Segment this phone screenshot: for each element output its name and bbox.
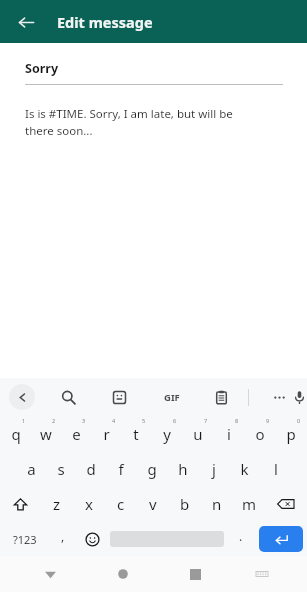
staticText: Sorry: [25, 60, 59, 77]
button[interactable]: Search: [55, 384, 81, 410]
staticText: GIF: [164, 391, 180, 404]
button[interactable]: m: [233, 486, 265, 522]
staticText: s: [57, 459, 65, 479]
staticText: z: [53, 494, 61, 514]
staticText: w: [40, 424, 52, 444]
staticText: j: [212, 459, 216, 479]
staticText: h: [178, 459, 188, 479]
staticText: 7: [204, 417, 208, 424]
button[interactable]: Clipboard: [208, 384, 234, 410]
button[interactable]: Stickers: [106, 384, 132, 410]
staticText: 5: [142, 417, 146, 424]
button[interactable]: Back: [9, 5, 43, 39]
button[interactable]: e: [61, 416, 91, 451]
button[interactable]: a: [16, 451, 46, 486]
staticText: Edit message: [57, 12, 153, 32]
button[interactable]: Switch keyboard: [231, 556, 293, 592]
button[interactable]: y: [151, 416, 182, 451]
staticText: k: [240, 459, 249, 479]
button[interactable]: x: [73, 486, 105, 522]
staticText: Is is #TIME. Sorry, I am late, but will …: [25, 106, 233, 138]
staticText: 8: [235, 417, 239, 424]
button[interactable]: r: [91, 416, 121, 451]
button[interactable]: p: [275, 416, 306, 451]
staticText: 3: [82, 417, 86, 424]
button[interactable]: o: [244, 416, 275, 451]
staticText: p: [286, 424, 296, 444]
staticText: a: [27, 459, 36, 479]
button[interactable]: Recents: [159, 556, 231, 592]
button[interactable]: Enter: [259, 526, 303, 552]
staticText: e: [72, 424, 81, 444]
button[interactable]: Shift: [0, 486, 41, 522]
staticText: o: [255, 424, 265, 444]
button[interactable]: .: [226, 522, 255, 556]
staticText: ,: [61, 528, 65, 544]
staticText: n: [212, 494, 222, 514]
staticText: 1: [22, 417, 26, 424]
button[interactable]: c: [105, 486, 137, 522]
button[interactable]: Collapse toolbar: [9, 384, 35, 410]
button[interactable]: Back: [14, 556, 87, 592]
staticText: l: [274, 459, 278, 479]
staticText: d: [86, 459, 96, 479]
button[interactable]: n: [201, 486, 233, 522]
button[interactable]: l: [260, 451, 291, 486]
staticText: b: [180, 494, 190, 514]
staticText: i: [227, 424, 231, 444]
staticText: v: [149, 494, 157, 514]
staticText: q: [11, 424, 21, 444]
staticText: ?123: [13, 532, 37, 547]
button[interactable]: ?123: [0, 522, 49, 556]
button[interactable]: Voice input: [292, 384, 307, 410]
staticText: 2: [52, 417, 56, 424]
staticText: 4: [112, 417, 116, 424]
button[interactable]: s: [46, 451, 76, 486]
button[interactable]: d: [76, 451, 106, 486]
button[interactable]: h: [167, 451, 198, 486]
staticText: x: [85, 494, 93, 514]
button[interactable]: ,: [49, 522, 77, 556]
button[interactable]: j: [198, 451, 229, 486]
staticText: m: [242, 494, 257, 514]
button[interactable]: z: [41, 486, 73, 522]
staticText: 9: [266, 417, 270, 424]
button[interactable]: q: [1, 416, 31, 451]
staticText: 6: [173, 417, 177, 424]
staticText: .: [239, 528, 243, 544]
staticText: f: [118, 459, 124, 479]
staticText: r: [103, 424, 110, 444]
staticText: g: [147, 459, 157, 479]
button[interactable]: i: [213, 416, 244, 451]
button[interactable]: GIF: [157, 382, 187, 412]
button[interactable]: u: [182, 416, 213, 451]
button[interactable]: Backspace: [265, 486, 307, 522]
button[interactable]: t: [121, 416, 151, 451]
staticText: 0: [297, 417, 301, 424]
button[interactable]: w: [31, 416, 61, 451]
staticText: u: [193, 424, 203, 444]
button[interactable]: Home: [87, 556, 159, 592]
button[interactable]: b: [169, 486, 201, 522]
button[interactable]: Emoji: [77, 522, 108, 556]
button[interactable]: f: [106, 451, 136, 486]
button[interactable]: More options: [266, 384, 292, 410]
button[interactable]: g: [136, 451, 167, 486]
staticText: y: [163, 424, 171, 444]
staticText: c: [117, 494, 125, 514]
staticText: t: [133, 424, 139, 444]
button[interactable]: k: [229, 451, 260, 486]
button[interactable]: v: [137, 486, 169, 522]
